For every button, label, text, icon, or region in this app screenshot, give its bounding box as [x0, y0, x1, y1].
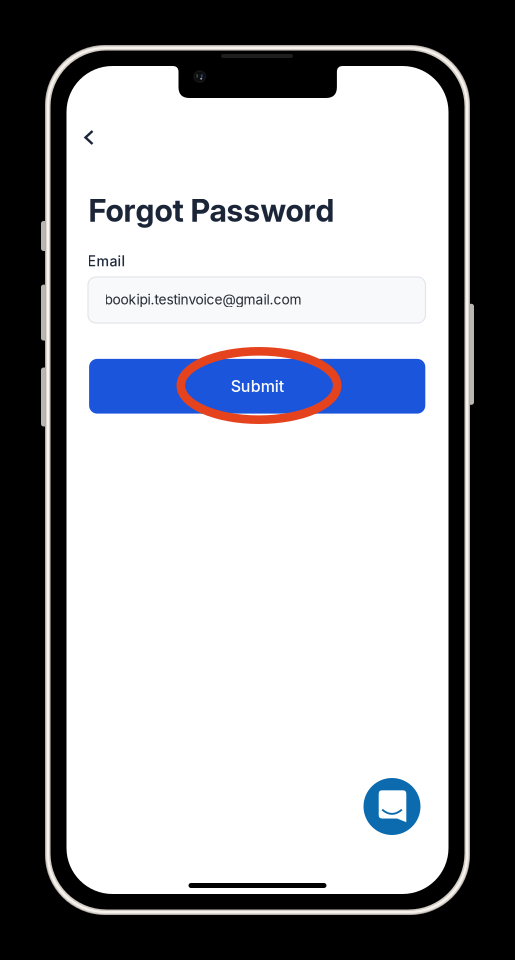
button[interactable]: Submit	[89, 359, 425, 414]
staticText: Submit	[231, 377, 284, 396]
button[interactable]: Open chat	[363, 778, 420, 835]
staticText: Forgot Password	[88, 192, 334, 229]
button[interactable]: Back	[66, 115, 110, 159]
staticText: bookipi.testinvoice@gmail.com	[104, 291, 301, 308]
staticText: Email	[87, 252, 125, 269]
